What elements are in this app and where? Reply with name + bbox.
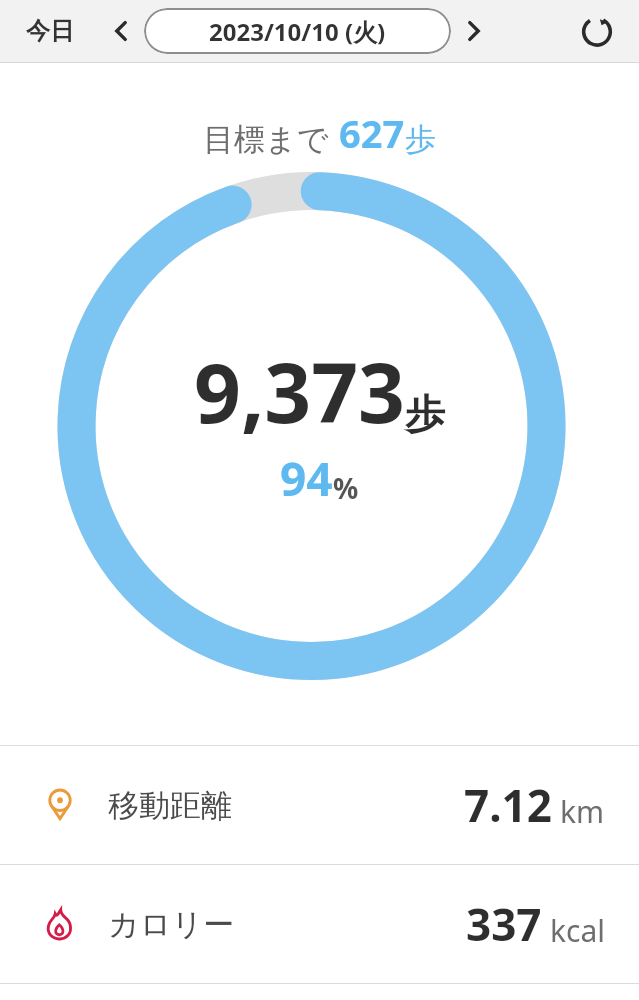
- staticText: 9,373: [194, 335, 405, 447]
- staticText: 7.12: [464, 775, 552, 835]
- button[interactable]: 移動距離: [0, 746, 639, 864]
- staticText: 目標まで: [203, 120, 329, 159]
- staticText: km: [560, 791, 605, 832]
- button[interactable]: 2023/10/10 (火): [144, 8, 451, 54]
- staticText: 歩: [405, 389, 445, 439]
- staticText: 627: [339, 107, 405, 159]
- staticText: 今日: [26, 16, 74, 46]
- staticText: カロリー: [108, 905, 235, 944]
- button[interactable]: Refresh: [571, 5, 623, 57]
- button[interactable]: Next day: [451, 8, 497, 54]
- staticText: 337: [466, 894, 542, 954]
- staticText: 移動距離: [108, 786, 232, 825]
- staticText: 94: [280, 447, 333, 510]
- button[interactable]: 今日: [16, 10, 84, 52]
- button[interactable]: カロリー: [0, 865, 639, 983]
- staticText: 歩: [405, 120, 436, 159]
- button[interactable]: Previous day: [98, 8, 144, 54]
- staticText: kcal: [550, 910, 605, 951]
- staticText: 2023/10/10 (火): [209, 15, 386, 48]
- staticText: %: [333, 469, 359, 507]
